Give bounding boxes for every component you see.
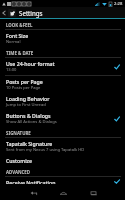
staticText: ADVANCED: [6, 169, 30, 175]
button[interactable]: Tapatalk Signature: [0, 138, 125, 155]
staticText: Tapatalk Signature: [6, 140, 53, 147]
staticText: Buttons & Dialogs: [6, 112, 51, 119]
button[interactable]: Font Size: [0, 30, 125, 47]
staticText: Font Size: [6, 32, 29, 39]
staticText: SIGNATURE: [6, 130, 31, 136]
button[interactable]: Loading Behavior: [0, 93, 125, 110]
button[interactable]: Home: [48, 186, 78, 200]
staticText: Posts per Page: [6, 78, 43, 85]
button[interactable]: Toggle setting: [113, 115, 121, 123]
staticText: 10 Posts per Page: [6, 85, 41, 91]
staticText: 13:00: [6, 67, 17, 73]
staticText: 2:28: [114, 1, 123, 7]
button[interactable]: Posts per Page: [0, 76, 125, 93]
button[interactable]: Toggle setting: [113, 63, 121, 71]
button[interactable]: Navigate up: [0, 7, 17, 18]
button[interactable]: Use 24-hour format: [0, 58, 125, 75]
button[interactable]: Toggle setting: [113, 179, 121, 184]
staticText: TIME & DATE: [6, 50, 34, 56]
staticText: Show All Actions & Dialogs: [6, 119, 57, 125]
staticText: Normal: [6, 39, 21, 45]
button[interactable]: Customize: [0, 155, 125, 166]
staticText: Sent from my Nexus 7 using Tapatalk HD: [6, 147, 85, 153]
staticText: Settings: [19, 9, 43, 17]
staticText: Use 24-hour format: [6, 60, 55, 67]
staticText: Customize: [6, 157, 32, 164]
button[interactable]: Buttons & Dialogs: [0, 110, 125, 127]
staticText: Receive Notification: [6, 179, 56, 184]
staticText: LOOK &FEEL: [6, 22, 33, 28]
staticText: Loading Behavior: [6, 95, 50, 102]
button[interactable]: Recent apps: [78, 186, 108, 200]
button[interactable]: Receive Notification: [0, 177, 125, 186]
button[interactable]: Back: [18, 186, 48, 200]
staticText: Jump to First Unread: [6, 102, 46, 108]
